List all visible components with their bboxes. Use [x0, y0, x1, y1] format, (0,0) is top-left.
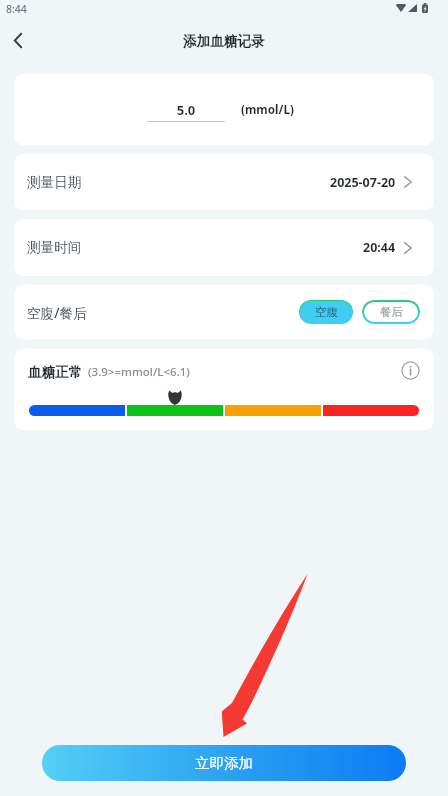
staticText: (3.9>=mmol/L<6.1) — [88, 364, 190, 380]
staticText: (mmol/L) — [241, 101, 294, 117]
button[interactable]: 测量时间 — [14, 219, 434, 276]
button[interactable]: Back — [1, 23, 35, 57]
staticText: 测量日期 — [27, 174, 82, 191]
staticText: 空腹/餐后 — [27, 303, 87, 322]
staticText: 立即添加 — [195, 754, 253, 772]
staticText: 5.0 — [161, 101, 211, 119]
staticText: 2025-07-20 — [330, 174, 396, 191]
button[interactable]: 餐后 — [362, 300, 420, 324]
button[interactable]: Info — [401, 361, 420, 380]
staticText: 测量时间 — [27, 239, 82, 256]
staticText: 添加血糖记录 — [183, 33, 265, 50]
staticText: 8:44 — [6, 2, 27, 16]
staticText: 血糖正常 — [28, 364, 83, 381]
staticText: 空腹 — [315, 305, 338, 319]
staticText: 20:44 — [363, 239, 396, 256]
button[interactable]: 立即添加 — [42, 745, 406, 781]
button[interactable]: 空腹 — [300, 301, 352, 323]
staticText: 餐后 — [380, 305, 403, 319]
button[interactable]: 测量日期 — [14, 154, 434, 210]
